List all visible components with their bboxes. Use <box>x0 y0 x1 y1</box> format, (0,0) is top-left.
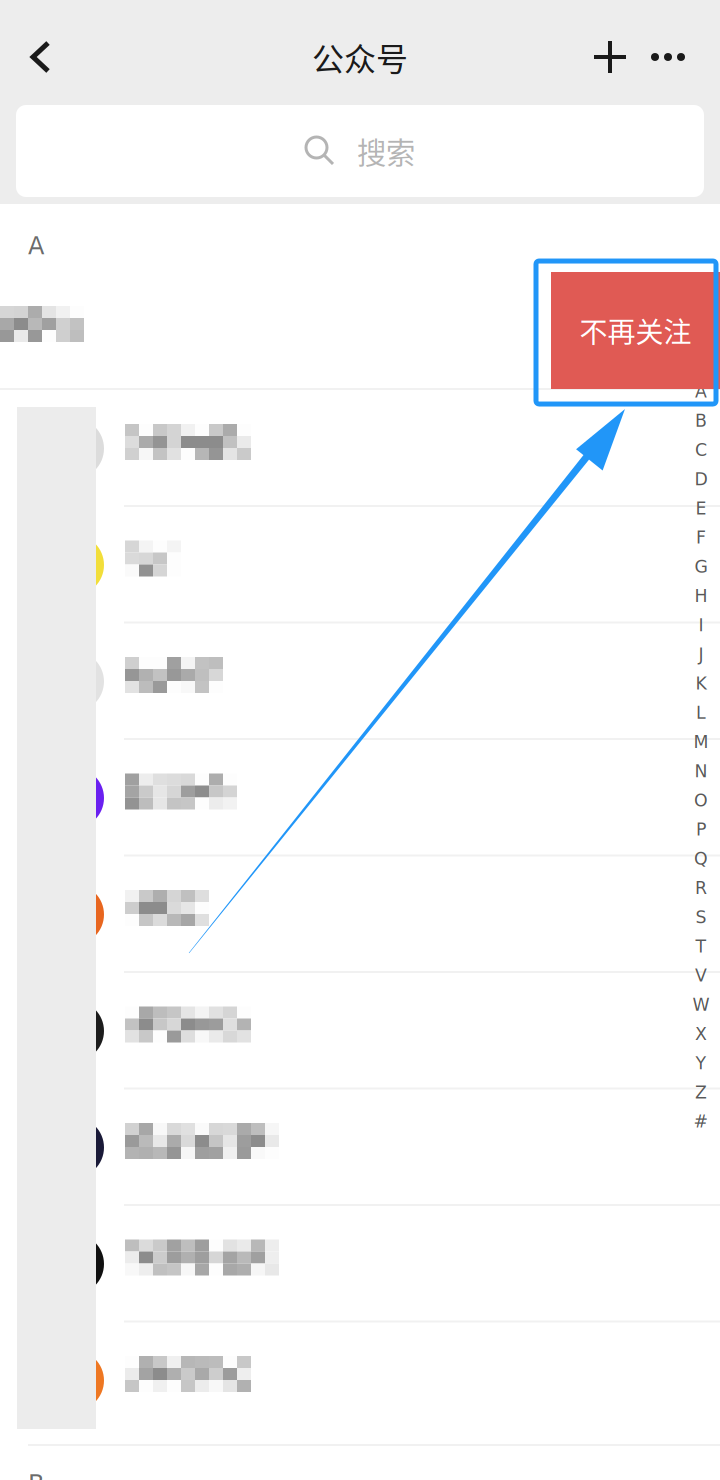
staticText: A <box>695 381 707 402</box>
staticText: E <box>695 498 706 518</box>
staticText: Q <box>694 849 708 869</box>
staticText: B <box>28 1470 44 1480</box>
staticText: H <box>694 586 707 606</box>
staticText: N <box>694 761 707 781</box>
staticText: 公众号 <box>312 34 408 80</box>
button[interactable]: More <box>630 20 706 94</box>
staticText: B <box>695 411 707 431</box>
staticText: W <box>692 995 709 1015</box>
staticText: Z <box>695 1082 707 1102</box>
staticText: K <box>695 673 706 694</box>
staticText: F <box>696 527 706 548</box>
staticText: L <box>696 703 706 723</box>
button[interactable]: Back <box>6 16 75 98</box>
staticText: # <box>693 1111 708 1132</box>
staticText: 搜索 <box>357 130 415 172</box>
button[interactable]: 搜索 <box>16 105 704 197</box>
staticText: M <box>693 732 708 752</box>
staticText: G <box>694 557 707 577</box>
button[interactable]: 不再关注 <box>551 272 720 389</box>
staticText: C <box>695 440 707 460</box>
staticText: 不再关注 <box>579 310 691 351</box>
staticText: X <box>695 1024 707 1044</box>
staticText: V <box>695 965 707 986</box>
staticText: J <box>698 644 703 664</box>
staticText: Y <box>695 1053 706 1073</box>
staticText: T <box>695 936 706 956</box>
staticText: D <box>694 469 707 489</box>
staticText: O <box>694 790 708 810</box>
staticText: A <box>28 232 44 260</box>
staticText: S <box>695 907 706 927</box>
button[interactable]: Add <box>573 20 647 94</box>
staticText: P <box>696 819 706 840</box>
staticText: R <box>695 878 707 898</box>
staticText: I <box>698 615 703 635</box>
